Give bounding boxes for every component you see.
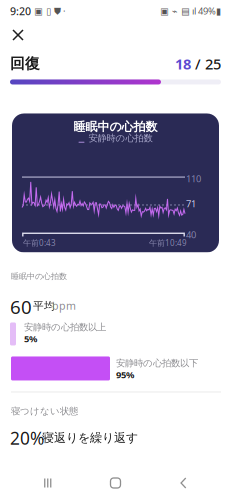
staticText: 5% — [24, 332, 37, 345]
staticText: ▣ ▯ ⛊ · — [31, 5, 66, 17]
staticText: 20% — [10, 426, 44, 449]
staticText: 午前0:43 — [23, 237, 56, 248]
staticText: 睡眠中の心拍数 — [11, 271, 67, 281]
staticText: / 25 — [191, 54, 221, 73]
staticText: 安静時の心拍数以下 — [116, 357, 198, 369]
staticText: bpm — [52, 298, 76, 313]
staticText: 平均 — [33, 299, 55, 313]
staticText: ▣ ⌁ ▤ ıl 49%▮ — [160, 5, 221, 17]
staticText: 安静時の心拍数以上 — [24, 321, 106, 333]
staticText: 95% — [116, 368, 134, 381]
button[interactable]: Close — [5, 20, 31, 50]
staticText: 9:20 — [10, 4, 31, 18]
staticText: 60 — [10, 294, 32, 319]
staticText: 110 — [186, 172, 201, 185]
staticText: 18 — [175, 54, 191, 73]
button[interactable]: Home — [95, 470, 135, 496]
button[interactable]: Recents — [28, 470, 68, 496]
button[interactable]: Back — [163, 470, 203, 496]
staticText: 睡眠中の心拍数 — [73, 119, 157, 134]
staticText: 71 — [186, 197, 196, 210]
staticText: 寝返りを繰り返す — [42, 430, 138, 445]
staticText: 40 — [186, 228, 196, 241]
staticText: 寝つけない状態 — [11, 405, 78, 417]
staticText: 安静時の心拍数 — [88, 132, 152, 144]
staticText: 午前10:49 — [149, 237, 187, 248]
staticText: 回復 — [10, 55, 40, 73]
